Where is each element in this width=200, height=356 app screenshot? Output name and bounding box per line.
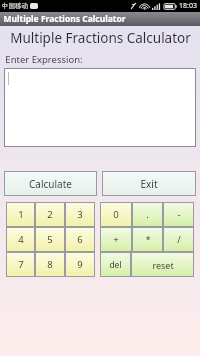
button[interactable]: Exit bbox=[102, 171, 196, 196]
staticText: del bbox=[109, 259, 122, 271]
staticText: reset bbox=[152, 259, 174, 271]
staticText: 4 bbox=[18, 233, 24, 246]
staticText: 7 bbox=[18, 258, 24, 271]
button[interactable]: 7 bbox=[6, 252, 35, 277]
button[interactable]: 5 bbox=[35, 227, 65, 252]
staticText: 1 bbox=[18, 208, 24, 221]
staticText: . bbox=[146, 208, 149, 221]
button[interactable]: Minus bbox=[163, 202, 194, 227]
staticText: 5 bbox=[47, 233, 53, 246]
staticText: + bbox=[113, 233, 119, 246]
button[interactable]: 3 bbox=[65, 202, 95, 227]
button[interactable]: Plus bbox=[100, 227, 132, 252]
staticText: Exit bbox=[140, 177, 158, 191]
staticText: / bbox=[177, 233, 181, 246]
staticText: 6 bbox=[77, 233, 83, 246]
staticText: 18:03 bbox=[179, 1, 197, 11]
button[interactable]: reset bbox=[131, 252, 194, 277]
button[interactable]: Decimal point bbox=[132, 202, 163, 227]
staticText: Multiple Fractions Calculator bbox=[10, 29, 191, 47]
button[interactable]: Multiply bbox=[132, 227, 163, 252]
staticText: 9 bbox=[77, 258, 83, 271]
staticText: 中国移动 bbox=[2, 2, 28, 10]
button[interactable]: 8 bbox=[35, 252, 65, 277]
staticText: 8 bbox=[47, 258, 53, 271]
staticText: 2 bbox=[47, 208, 53, 221]
staticText: Enter Expression: bbox=[5, 53, 83, 66]
staticText: 0 bbox=[113, 208, 119, 221]
button[interactable]: Calculate bbox=[4, 171, 97, 196]
button[interactable]: del bbox=[100, 252, 131, 277]
button[interactable]: 6 bbox=[65, 227, 95, 252]
button[interactable]: 2 bbox=[35, 202, 65, 227]
button[interactable] bbox=[4, 68, 196, 147]
button[interactable]: Divide bbox=[163, 227, 194, 252]
button[interactable]: 0 bbox=[100, 202, 132, 227]
staticText: Multiple Fractions Calculator bbox=[3, 13, 126, 25]
button[interactable]: 1 bbox=[6, 202, 35, 227]
staticText: * bbox=[145, 233, 151, 246]
staticText: - bbox=[177, 208, 181, 221]
button[interactable]: 4 bbox=[6, 227, 35, 252]
staticText: 3 bbox=[77, 208, 83, 221]
button[interactable]: 9 bbox=[65, 252, 95, 277]
staticText: Calculate bbox=[29, 177, 72, 191]
